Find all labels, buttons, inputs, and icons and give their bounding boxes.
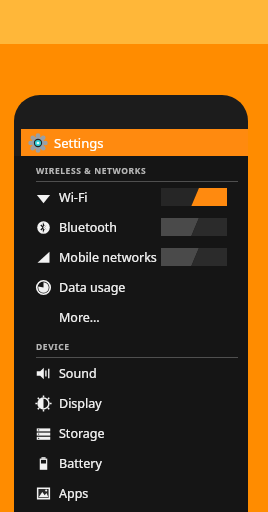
other: Settings (29, 134, 47, 152)
button[interactable]: Storage (14, 418, 248, 448)
button[interactable]: Mobile networks (14, 242, 248, 272)
button[interactable]: Bluetooth (14, 212, 248, 242)
staticText: Storage (59, 425, 105, 442)
staticText: WIRELESS & NETWORKS (36, 165, 147, 177)
staticText: Apps (59, 485, 89, 502)
staticText: Wi-Fi (59, 189, 88, 206)
staticText: Bluetooth (59, 219, 118, 236)
button[interactable]: More… (14, 302, 248, 332)
staticText: Mobile networks (59, 249, 157, 266)
button[interactable]: Settings (21, 129, 248, 156)
button[interactable]: Display (14, 388, 248, 418)
staticText: Data usage (59, 279, 126, 296)
staticText: Settings (54, 134, 104, 152)
staticText: Sound (59, 365, 97, 382)
staticText: More… (59, 309, 100, 326)
staticText: Display (59, 395, 102, 412)
button[interactable]: Wi-Fi (14, 182, 248, 212)
button[interactable]: Data usage (14, 272, 248, 302)
button[interactable]: Sound (14, 358, 248, 388)
button[interactable]: Battery (14, 448, 248, 478)
staticText: Battery (59, 455, 102, 472)
button[interactable]: Apps (14, 478, 248, 508)
staticText: DEVICE (36, 341, 70, 353)
